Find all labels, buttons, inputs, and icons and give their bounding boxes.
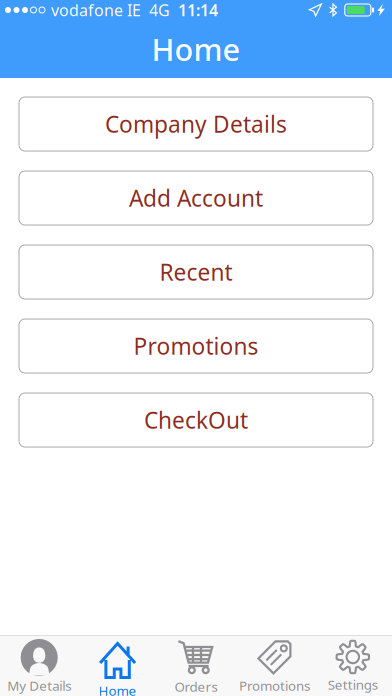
staticText: Promotions [239,677,310,694]
button[interactable]: Promotions [235,635,314,696]
button[interactable]: CheckOut [19,393,373,447]
staticText: Promotions [133,331,258,361]
staticText: 11:14 [178,0,218,21]
staticText: Home [99,682,137,696]
button[interactable]: Promotions [19,319,373,373]
staticText: 4G [149,0,170,21]
staticText: Recent [159,257,232,287]
staticText: Add Account [129,183,263,213]
staticText: CheckOut [144,405,248,435]
button[interactable]: Home [78,635,157,696]
button[interactable]: Recent [19,245,373,299]
button[interactable]: My Details [0,635,78,696]
staticText: My Details [7,677,71,694]
button[interactable]: Add Account [19,171,373,225]
staticText: Orders [174,678,217,695]
staticText: vodafone IE [51,0,141,21]
staticText: Settings [328,676,378,693]
button[interactable]: Orders [157,635,235,696]
staticText: Company Details [105,109,287,139]
button[interactable]: Settings [314,635,392,696]
staticText: Home [151,29,240,69]
button[interactable]: Company Details [19,97,373,151]
